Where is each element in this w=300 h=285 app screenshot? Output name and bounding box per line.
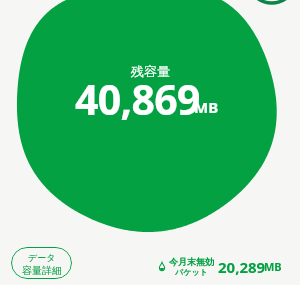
staticText: 20,289	[218, 257, 266, 277]
staticText: 今月末無効	[169, 256, 214, 267]
button[interactable]: データ	[11, 247, 72, 279]
staticText: 残容量	[131, 63, 170, 79]
staticText: データ	[28, 252, 56, 263]
staticText: 40,869	[75, 71, 200, 127]
staticText: 容量詳細	[22, 264, 62, 277]
staticText: MB	[264, 259, 282, 274]
other: Water drop	[159, 262, 165, 271]
staticText: MB	[194, 97, 219, 117]
staticText: パケット	[175, 267, 208, 277]
